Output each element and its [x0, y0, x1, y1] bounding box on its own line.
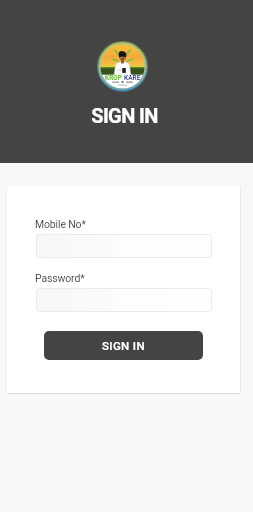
staticText: SIGN IN — [102, 339, 145, 352]
button[interactable] — [36, 288, 212, 312]
staticText: SIGN IN — [0, 104, 251, 127]
button[interactable] — [36, 234, 212, 258]
other: Krop Kare logo — [97, 41, 148, 92]
staticText: KARE — [124, 74, 141, 82]
staticText: KROP — [105, 74, 122, 82]
staticText: Password* — [35, 272, 85, 284]
button[interactable]: SIGN IN — [44, 331, 203, 360]
staticText: Mobile No* — [35, 218, 86, 230]
